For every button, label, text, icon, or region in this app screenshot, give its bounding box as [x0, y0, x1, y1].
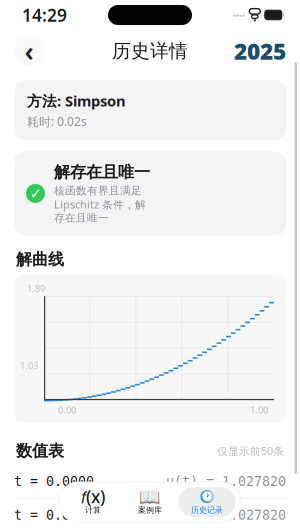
staticText: u(t) = 1.027820 [166, 474, 286, 489]
button[interactable]: 🕐 [178, 487, 235, 517]
staticText: 方法: Simpson [27, 91, 126, 110]
staticText: 仅显示前50条 [217, 444, 284, 458]
staticText: ···· [233, 7, 245, 23]
staticText: ✓ [29, 185, 41, 202]
staticText: 计算 [85, 505, 101, 515]
staticText: u(t) = 1.027820 [166, 508, 286, 523]
staticText: 解曲线 [16, 249, 64, 269]
staticText: 核函数有界且满足 Lipschitz 条件，解存在且唯一 [54, 184, 146, 224]
button[interactable]: 𝑓(x) [64, 487, 121, 517]
button[interactable]: 返回 [14, 36, 44, 66]
staticText: 1.89 [27, 282, 45, 294]
staticText: 解存在且唯一 [54, 162, 150, 182]
staticText: 历史记录 [191, 505, 223, 515]
staticText: 0.00 [58, 404, 76, 416]
staticText: 1.03 [20, 359, 38, 372]
staticText: 历史详情 [112, 39, 188, 62]
staticText: 𝑓(x) [81, 485, 105, 508]
staticText: 2025 [234, 36, 286, 66]
staticText: 数值表 [16, 441, 64, 461]
staticText: 案例库 [138, 505, 162, 515]
button[interactable]: 2025 [234, 36, 286, 66]
staticText: t = 0.0100 [14, 508, 94, 523]
staticText: ‹ [24, 33, 33, 69]
button[interactable]: 📖 [121, 487, 178, 517]
staticText: 耗时: 0.02s [27, 113, 87, 129]
staticText: 1.00 [250, 404, 268, 416]
staticText: 🕐 [200, 490, 213, 503]
staticText: 14:29 [22, 3, 67, 26]
staticText: 📖 [139, 487, 161, 506]
staticText: t = 0.0000 [14, 474, 94, 489]
